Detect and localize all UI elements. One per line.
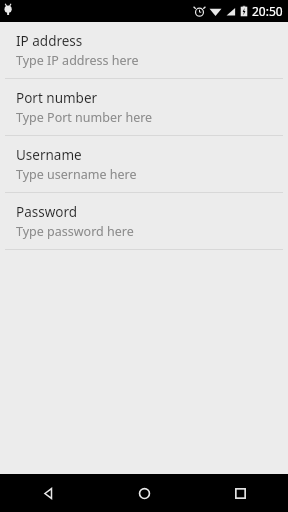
button[interactable]: Password <box>0 193 288 250</box>
staticText: Type password here <box>16 223 134 240</box>
staticText: Type Port number here <box>16 109 153 126</box>
staticText: Type IP address here <box>16 52 139 69</box>
button[interactable]: Back <box>0 474 96 512</box>
button[interactable]: Home <box>96 474 192 512</box>
button[interactable]: Recent apps <box>192 474 288 512</box>
staticText: Password <box>16 203 78 221</box>
button[interactable]: IP address <box>0 22 288 79</box>
staticText: Type username here <box>16 166 137 183</box>
button[interactable]: Username <box>0 136 288 193</box>
staticText: 20:50 <box>252 3 283 19</box>
staticText: Port number <box>16 89 98 107</box>
button[interactable]: Port number <box>0 79 288 136</box>
staticText: Username <box>16 146 82 164</box>
staticText: IP address <box>16 32 83 50</box>
